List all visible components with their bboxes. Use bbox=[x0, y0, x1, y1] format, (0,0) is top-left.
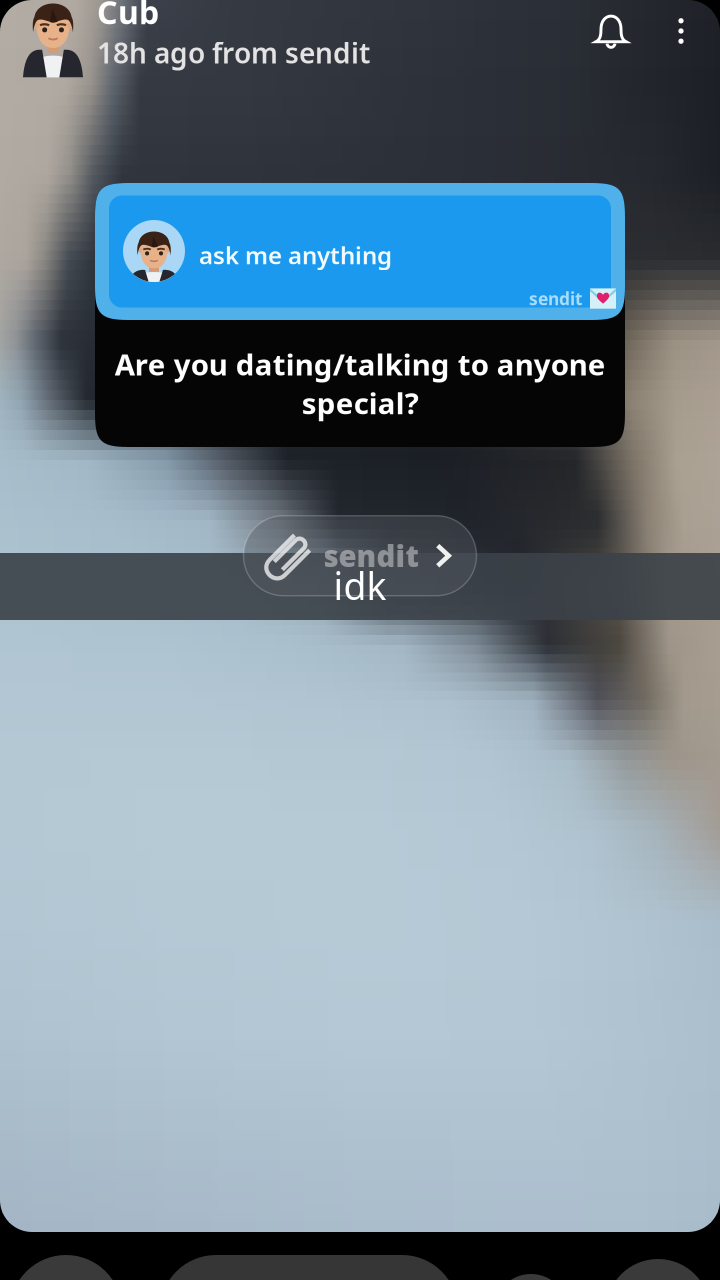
staticText: sendit bbox=[323, 536, 418, 575]
button[interactable]: More options bbox=[664, 14, 698, 48]
button[interactable]: Notifications bbox=[590, 10, 632, 52]
staticText: Cub bbox=[97, 0, 159, 33]
staticText: idk bbox=[333, 561, 386, 610]
staticText: ask me anything bbox=[199, 239, 392, 271]
button[interactable]: Save to memories bbox=[494, 1255, 568, 1280]
button[interactable]: More bbox=[606, 1255, 710, 1280]
staticText: Are you dating/talking to anyone special… bbox=[114, 344, 605, 422]
button[interactable]: Cub bbox=[22, 0, 370, 71]
button[interactable]: Camera roll bbox=[10, 1255, 122, 1280]
staticText: sendit bbox=[529, 287, 583, 310]
staticText: 18h ago from sendit bbox=[97, 34, 370, 71]
button[interactable]: Send to bbox=[160, 1255, 458, 1280]
